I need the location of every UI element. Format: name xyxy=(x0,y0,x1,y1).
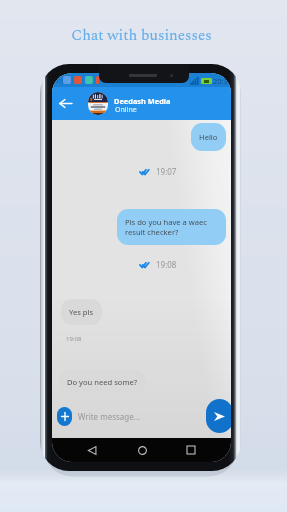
staticText: Chat with businesses xyxy=(0,24,285,47)
staticText: Do you need some? xyxy=(67,377,138,387)
staticText: Write message... xyxy=(78,411,141,422)
button[interactable]: Hello xyxy=(191,123,226,151)
button[interactable]: Back xyxy=(82,440,102,460)
button[interactable]: Back xyxy=(55,93,76,114)
button[interactable]: Send xyxy=(206,399,231,433)
staticText: 19:07 xyxy=(156,166,177,177)
staticText: Yes pls xyxy=(69,307,94,317)
button[interactable]: Home xyxy=(132,440,152,460)
button[interactable]: Recent apps xyxy=(181,440,201,460)
button[interactable]: Yes pls xyxy=(61,299,102,325)
staticText: MTN xyxy=(54,78,66,85)
button[interactable]: Add attachment xyxy=(57,407,72,426)
button[interactable]: Pls do you have a waec result checker? xyxy=(117,209,226,245)
staticText: Hello xyxy=(199,132,218,142)
button[interactable]: Do you need some? xyxy=(59,370,146,394)
staticText: 20:31 xyxy=(213,76,231,86)
staticText: Pls do you have a waec result checker? xyxy=(125,217,207,237)
staticText: Deedash Media xyxy=(114,96,171,106)
staticText: 19:08 xyxy=(156,259,177,270)
staticText: Online xyxy=(115,105,137,115)
staticText: 19:08 xyxy=(66,335,82,343)
